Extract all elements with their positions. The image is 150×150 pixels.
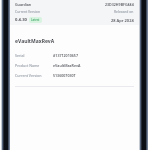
staticText: Released on [114,9,134,14]
staticText: 0.4.30 [15,17,27,23]
staticText: eVaultMaxRevA [15,38,55,45]
staticText: #13712010657 [53,53,78,58]
staticText: Current Version [15,73,42,78]
button[interactable]: Guardian [10,0,139,25]
staticText: Latest [31,18,40,22]
staticText: 28 Apr 2024 [111,18,134,23]
staticText: Current Version [15,9,41,14]
staticText: 5136007030T [53,73,76,78]
staticText: Serial [15,53,25,58]
button[interactable]: Current Version [15,73,134,78]
button[interactable]: Serial [15,53,134,58]
staticText: 23D32H9BFG444 [105,2,134,7]
staticText: eVaultMaxRevA [53,63,81,68]
staticText: Guardian [15,2,32,7]
button[interactable]: Product Name [15,63,134,68]
staticText: Product Name [15,63,40,68]
